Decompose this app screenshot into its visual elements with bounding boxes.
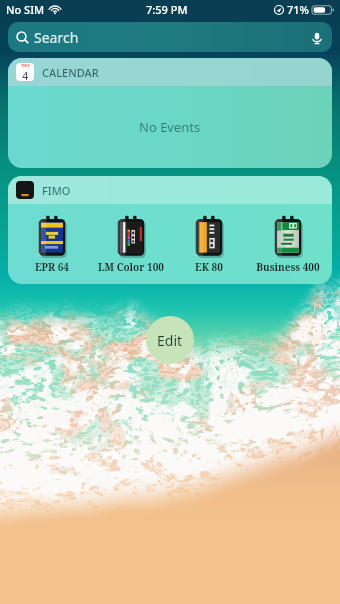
button[interactable]: EK 80 bbox=[170, 215, 248, 274]
staticText: No Events bbox=[139, 118, 201, 136]
staticText: LM Color 100 bbox=[98, 260, 164, 274]
staticText: Search bbox=[34, 28, 79, 47]
staticText: 71% bbox=[287, 2, 309, 17]
button[interactable]: Edit bbox=[146, 316, 194, 364]
button[interactable]: THU bbox=[8, 58, 332, 168]
button[interactable]: Business 400 bbox=[249, 215, 327, 274]
staticText: THU bbox=[21, 63, 30, 68]
staticText: No SIM bbox=[6, 2, 45, 17]
staticText: Edit bbox=[157, 331, 183, 350]
staticText: 4 bbox=[22, 68, 29, 81]
staticText: FIMO bbox=[42, 183, 71, 198]
button[interactable]: LM Color 100 bbox=[92, 215, 170, 274]
button[interactable]: Search bbox=[8, 22, 332, 52]
staticText: EK 80 bbox=[195, 260, 223, 274]
staticText: 7:59 PM bbox=[146, 2, 188, 17]
button[interactable]: EPR 64 bbox=[13, 215, 91, 274]
other: Voice search bbox=[310, 31, 324, 45]
staticText: Business 400 bbox=[256, 260, 320, 274]
staticText: EPR 64 bbox=[35, 260, 69, 274]
staticText: CALENDAR bbox=[42, 65, 99, 80]
